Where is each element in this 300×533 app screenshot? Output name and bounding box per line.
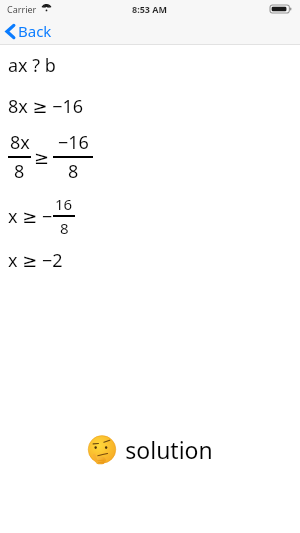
staticText: Back [18, 21, 52, 41]
staticText: x ≥ − [8, 204, 53, 229]
staticText: 8x [10, 130, 30, 155]
staticText: Carrier [7, 3, 37, 15]
staticText: 16 [55, 194, 73, 214]
staticText: 8:53 AM [132, 3, 168, 15]
staticText: solution [125, 434, 213, 465]
staticText: 8 [14, 159, 25, 184]
other: Thinking face [87, 435, 117, 465]
staticText: 8 [60, 218, 69, 238]
button[interactable]: Thinking face [0, 434, 300, 533]
button[interactable]: Back [0, 18, 62, 44]
staticText: −16 [58, 130, 89, 155]
staticText: ≥ [34, 147, 50, 168]
staticText: ax ? b [8, 53, 56, 78]
staticText: x ≥ −2 [8, 248, 63, 273]
staticText: 8 [68, 159, 79, 184]
staticText: 8x ≥ −16 [8, 94, 84, 119]
